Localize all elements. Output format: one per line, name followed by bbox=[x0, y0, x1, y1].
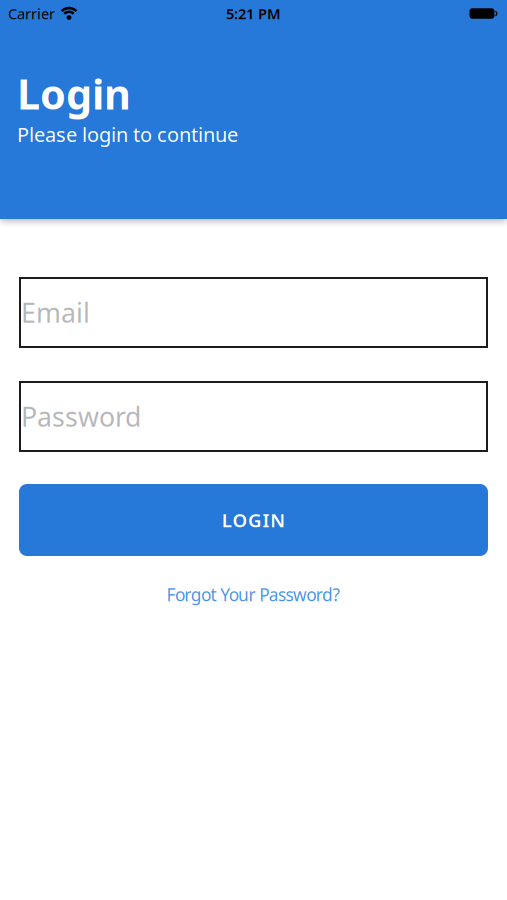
button[interactable]: LOGIN bbox=[19, 484, 488, 556]
staticText: Forgot Your Password? bbox=[166, 583, 340, 606]
staticText: Carrier bbox=[8, 4, 55, 23]
button[interactable]: Password bbox=[19, 381, 488, 452]
staticText: Email bbox=[21, 295, 90, 330]
button[interactable]: Forgot Your Password? bbox=[166, 583, 340, 606]
staticText: Login bbox=[17, 66, 131, 121]
staticText: 5:21 PM bbox=[226, 4, 281, 23]
staticText: Password bbox=[21, 399, 141, 434]
button[interactable]: Email bbox=[19, 277, 488, 348]
staticText: LOGIN bbox=[222, 508, 285, 532]
staticText: Please login to continue bbox=[17, 121, 238, 147]
